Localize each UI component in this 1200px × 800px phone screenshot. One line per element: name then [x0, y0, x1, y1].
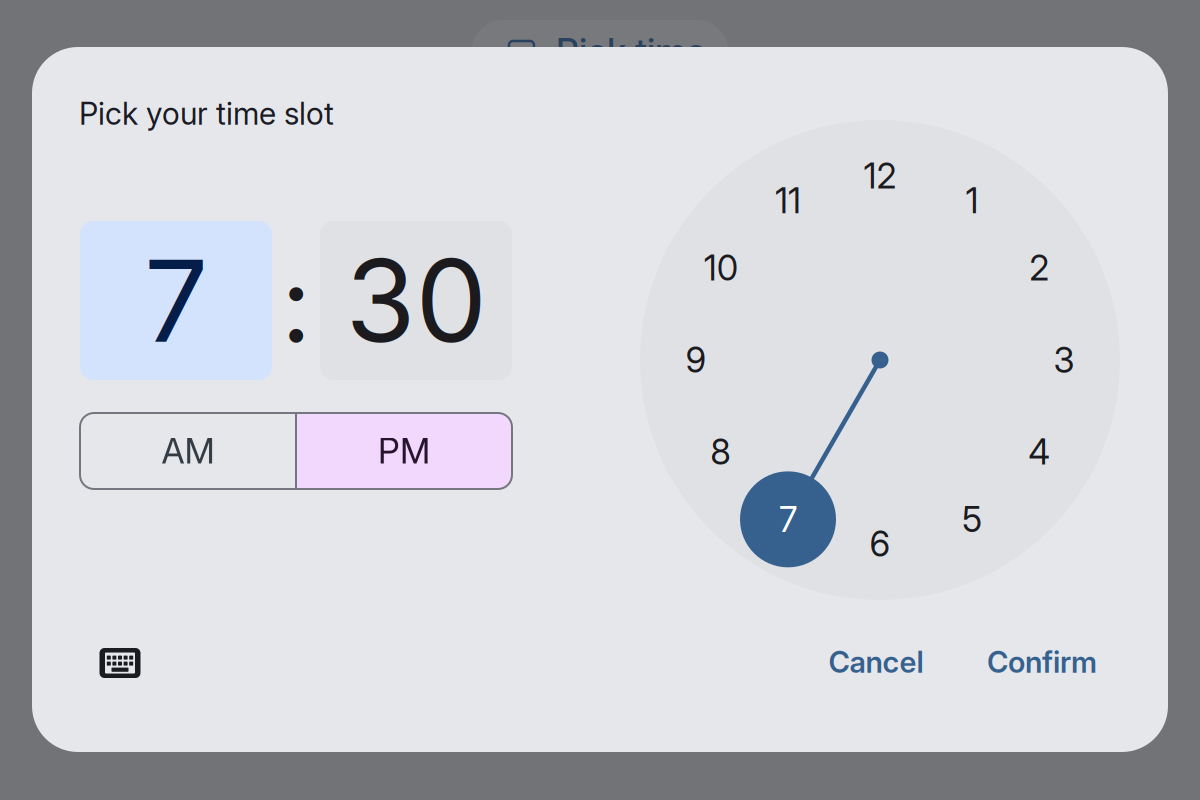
staticText: 7: [779, 498, 797, 540]
button[interactable]: 7: [80, 221, 272, 380]
staticText: 4: [1028, 431, 1050, 473]
staticText: Pick your time slot: [79, 95, 334, 132]
staticText: :: [281, 240, 311, 367]
staticText: PM: [378, 430, 430, 472]
staticText: AM: [161, 430, 214, 472]
button[interactable]: AM: [80, 413, 296, 489]
button[interactable]: Confirm: [964, 631, 1120, 693]
staticText: 7: [144, 232, 208, 369]
staticText: 30: [345, 232, 486, 369]
staticText: 5: [962, 498, 982, 540]
staticText: 3: [1053, 339, 1074, 381]
staticText: 10: [704, 247, 738, 289]
button[interactable]: PM: [296, 413, 512, 489]
staticText: Pick time: [556, 29, 706, 73]
staticText: 2: [1029, 247, 1049, 289]
button[interactable]: 30: [320, 221, 512, 380]
staticText: Confirm: [987, 644, 1097, 680]
staticText: 9: [685, 339, 706, 381]
button[interactable]: Cancel: [802, 631, 950, 693]
staticText: 11: [775, 180, 801, 222]
staticText: 8: [710, 431, 731, 473]
staticText: 12: [863, 155, 896, 197]
staticText: 1: [965, 180, 978, 222]
staticText: 6: [869, 523, 890, 565]
staticText: Cancel: [828, 644, 923, 680]
button[interactable]: Switch to text input: [94, 637, 146, 689]
button[interactable]: Pick time: [472, 20, 728, 82]
